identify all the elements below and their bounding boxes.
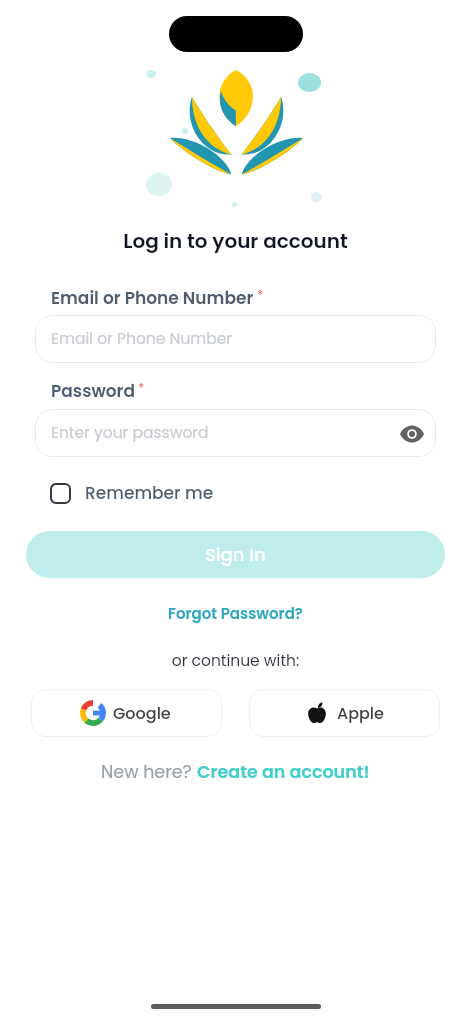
staticText: Remember me (85, 481, 214, 505)
staticText: Create an account! (197, 760, 370, 785)
staticText: * (254, 286, 264, 303)
button[interactable]: Sign In (26, 531, 445, 578)
button[interactable]: Email or Phone Number (35, 315, 436, 363)
button[interactable]: Show password (399, 421, 424, 446)
staticText: Log in to your account (0, 227, 471, 255)
staticText: Password (51, 379, 135, 403)
button[interactable]: Forgot Password? (168, 603, 303, 624)
staticText: Email or Phone Number (51, 328, 233, 350)
button[interactable]: Apple (249, 689, 440, 737)
button[interactable]: Create an account! (197, 760, 370, 785)
staticText: Sign In (205, 542, 266, 567)
staticText: Apple (337, 702, 384, 724)
staticText: New here? (101, 760, 197, 785)
staticText: Email or Phone Number (51, 286, 254, 310)
staticText: Google (113, 702, 171, 724)
staticText: * (135, 379, 145, 396)
staticText: Enter your password (51, 422, 209, 444)
button[interactable]: Google (31, 689, 222, 737)
button[interactable]: Remember me (50, 481, 214, 505)
staticText: Forgot Password? (168, 603, 303, 624)
button[interactable]: Enter your password (35, 409, 436, 457)
staticText: or continue with: (0, 650, 471, 672)
